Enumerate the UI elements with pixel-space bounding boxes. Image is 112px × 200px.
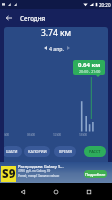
staticText: S9 [2,166,16,182]
staticText: 00:00 [4,133,10,137]
staticText: Сегодня [20,14,46,22]
staticText: 3.74 км [4,27,108,39]
staticText: 0.64 км [78,61,101,69]
staticText: ШАГИ [6,149,18,154]
button[interactable]: Подробнее [84,170,107,178]
button[interactable]: РАССТ [84,146,106,157]
staticText: РАССТ [89,149,101,154]
button[interactable]: ВРЕМЯ [54,146,76,157]
staticText: Распродажа Galaxy S... [18,164,64,170]
button[interactable]: Back [13,183,33,200]
staticText: 18:00 [79,133,88,137]
staticText: КАЛОРИИ [28,149,47,154]
staticText: Подробнее [85,172,106,177]
button[interactable]: S9 [0,162,112,183]
button[interactable]: КАЛОРИИ [24,146,50,157]
staticText: 3990 руб. на Galaxy S9 [18,169,51,173]
staticText: 20:00 - 21:00 [79,69,101,74]
staticText: ВРЕМЯ [59,149,72,154]
button[interactable]: ШАГИ [4,146,22,157]
button[interactable]: Previous day [41,44,49,52]
staticText: 06:00 [27,133,36,137]
staticText: 20:20 [99,2,111,8]
staticText: 12:00 [53,133,62,137]
staticText: 4 апр. [49,45,64,52]
button[interactable]: Recent apps [79,183,99,200]
button[interactable]: Next day [64,44,72,52]
button[interactable]: Home [46,183,66,200]
button[interactable]: Back [0,9,17,27]
button[interactable]: 0.64 км [73,60,105,75]
staticText: Успей, товар! Закажи сейчас [18,174,60,178]
